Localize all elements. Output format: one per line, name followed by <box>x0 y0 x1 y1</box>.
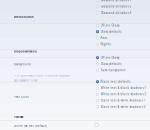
button[interactable]: Black text & white shadow v2 <box>96 104 145 110</box>
staticText: Text color <box>14 95 29 98</box>
staticText: Off (no Glass) <box>100 24 119 27</box>
staticText: Firefox button <box>14 16 34 19</box>
staticText: Semi transparent <box>100 69 125 72</box>
staticText: White tab text (default) <box>14 124 47 128</box>
button[interactable]: White tab text (default) <box>95 123 98 126</box>
staticText: Glass and alt-tabs v2 <box>100 5 131 8</box>
staticText: Glass and alt-tabs v1 <box>100 0 130 2</box>
button[interactable]: White text & black shadow v1 <box>96 85 145 91</box>
staticText: Off (no Glass) <box>100 56 119 59</box>
staticText: It is recommended to restart Firefox whe… <box>14 74 69 77</box>
staticText: Aero <box>100 36 107 40</box>
button[interactable]: Off (no Glass) <box>96 22 119 28</box>
staticText: Tweaks <box>14 116 23 119</box>
staticText: Dropdownmenu <box>14 50 37 53</box>
staticText: Nightly <box>100 43 111 46</box>
staticText: gets changed to "Glass" <box>14 79 38 82</box>
button[interactable]: Glass and alt-tabs v1 <box>96 0 130 3</box>
button[interactable]: Off (no Glass) <box>96 54 119 61</box>
staticText: Black text & white shadow v1 <box>100 99 144 102</box>
staticText: Glass (default) <box>100 62 121 66</box>
button[interactable]: Glass (default) <box>96 28 121 35</box>
staticText: White text & black shadow v1 <box>100 86 145 90</box>
button[interactable]: Nightly <box>96 41 111 47</box>
button[interactable]: White text & black shadow v2 <box>96 91 146 97</box>
button[interactable]: Glass and alt-tabs v2 <box>96 3 131 10</box>
staticText: Black text (default) <box>100 80 130 83</box>
button[interactable]: Glass (default) <box>96 61 121 67</box>
staticText: Background <box>14 63 31 66</box>
button[interactable]: Glass and alt-tabs v3 <box>96 10 131 16</box>
button[interactable]: Black text (default) <box>96 78 130 85</box>
button[interactable]: Aero <box>96 35 107 41</box>
staticText: Glass and alt-tabs v3 <box>100 11 131 15</box>
staticText: Black text & white shadow v2 <box>100 105 145 109</box>
button[interactable]: Black text & white shadow v1 <box>96 97 144 104</box>
staticText: White text & black shadow v2 <box>100 93 146 96</box>
staticText: Glass (default) <box>100 30 121 33</box>
button[interactable]: Semi transparent <box>96 67 125 73</box>
